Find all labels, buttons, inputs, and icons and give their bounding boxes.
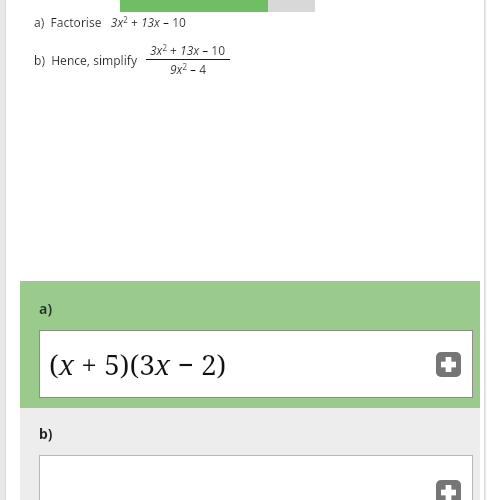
button[interactable]: Insert [39,455,473,500]
button[interactable]: (x + 5)(3x − 2) [39,330,473,398]
staticText: a) Factorise 3x2 + 13x – 10 [34,14,186,30]
staticText: 3x2 + 13x – 10 [150,42,226,58]
staticText: b) Hence, simplify [34,52,138,68]
button[interactable]: Insert [436,352,461,377]
button[interactable] [120,0,315,12]
staticText: a) [39,299,53,318]
staticText: 9x2 – 4 [170,61,207,77]
button[interactable]: Insert [436,480,461,500]
staticText: (x + 5)(3x − 2) [49,345,227,383]
staticText: b) [39,424,53,443]
